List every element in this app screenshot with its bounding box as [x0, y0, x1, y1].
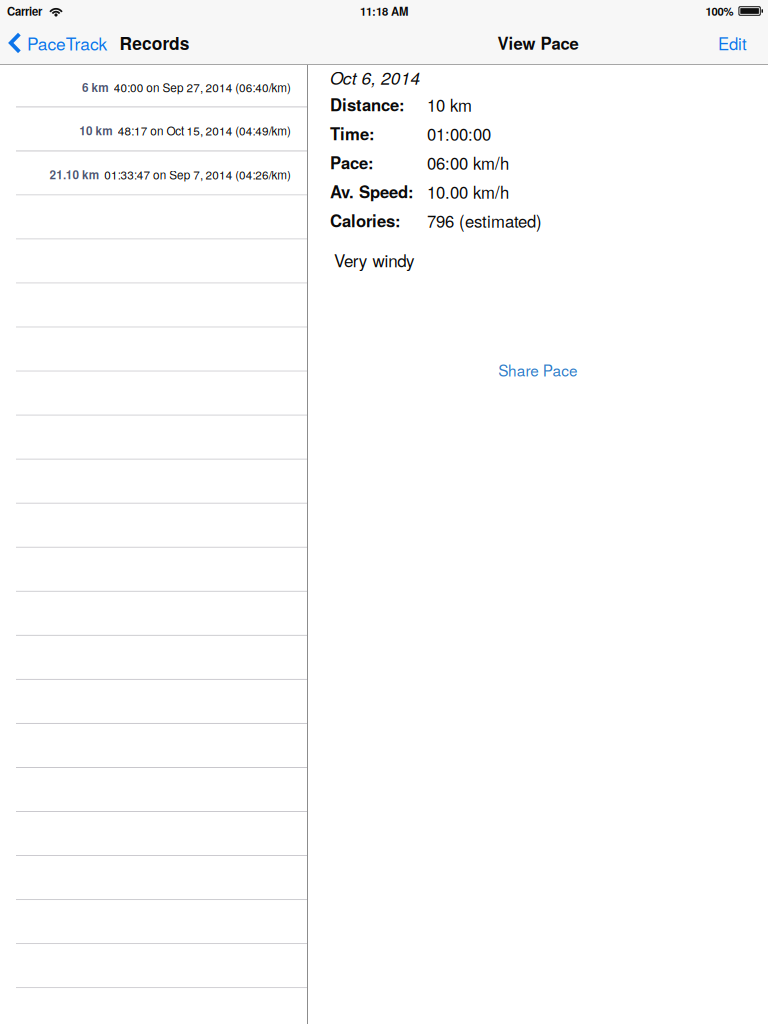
staticText: 21.10 km [49, 166, 99, 183]
staticText: View Pace [497, 31, 578, 55]
staticText: Pace: [330, 151, 374, 174]
staticText: Records [120, 31, 190, 55]
staticText: 796 (estimated) [427, 209, 542, 232]
staticText: Time: [330, 122, 375, 145]
button[interactable]: PaceTrack [0, 22, 112, 64]
staticText: 10 km [427, 93, 472, 116]
staticText: Edit [718, 31, 747, 55]
staticText: 11:18 AM [360, 3, 408, 19]
staticText: Av. Speed: [330, 180, 414, 203]
button[interactable]: Edit [702, 22, 768, 64]
staticText: 100% [705, 3, 733, 19]
staticText: 01:00:00 [427, 122, 491, 145]
staticText: Very windy [334, 248, 415, 272]
staticText: Share Pace [498, 359, 578, 381]
staticText: 40:00 on Sep 27, 2014 (06:40/km) [114, 79, 291, 96]
staticText: 48:17 on Oct 15, 2014 (04:49/km) [118, 122, 291, 139]
button[interactable]: 21.10 km [0, 151, 308, 195]
button[interactable]: 6 km [0, 65, 308, 107]
staticText: PaceTrack [27, 31, 108, 55]
staticText: 01:33:47 on Sep 7, 2014 (04:26/km) [104, 166, 291, 183]
staticText: Calories: [330, 209, 401, 232]
staticText: Distance: [330, 93, 405, 116]
staticText: Carrier [7, 3, 42, 19]
staticText: 6 km [82, 79, 108, 96]
staticText: 10 km [79, 122, 112, 139]
button[interactable]: 10 km [0, 107, 308, 151]
staticText: 06:00 km/h [427, 151, 509, 174]
staticText: 10.00 km/h [427, 180, 509, 203]
staticText: Oct 6, 2014 [330, 65, 420, 90]
button[interactable]: Share Pace [476, 352, 600, 388]
